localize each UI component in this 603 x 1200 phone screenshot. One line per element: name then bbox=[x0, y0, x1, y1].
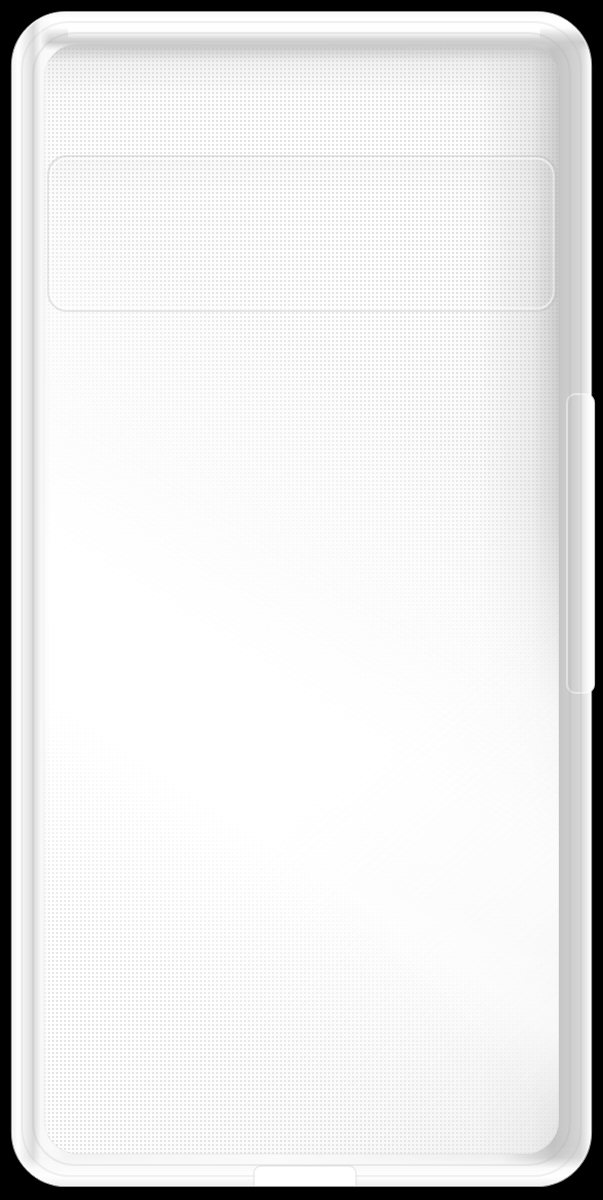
button[interactable]: Clear phone case bbox=[0, 0, 603, 1200]
